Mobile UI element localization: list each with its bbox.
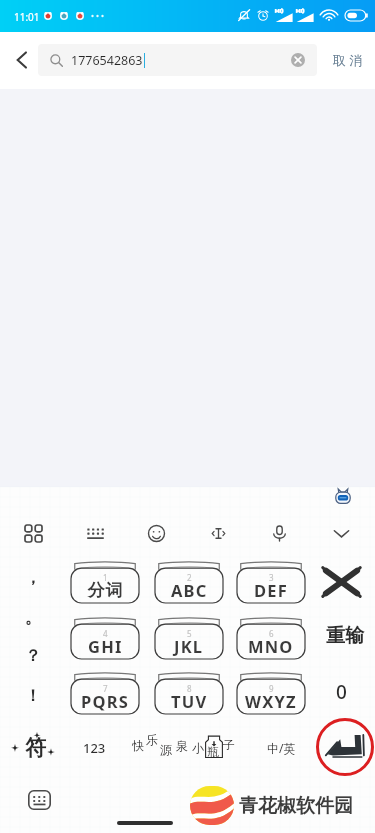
button[interactable]: 3 bbox=[237, 562, 305, 603]
button[interactable]: ？ bbox=[9, 640, 57, 672]
staticText: ？ bbox=[25, 646, 41, 666]
staticText: MNO bbox=[248, 635, 294, 657]
staticText: PQRS bbox=[81, 690, 130, 712]
staticText: WXYZ bbox=[245, 690, 297, 712]
staticText: 3 bbox=[269, 572, 274, 583]
button[interactable]: Apps bbox=[7, 514, 59, 552]
button[interactable]: Emoji bbox=[130, 514, 182, 552]
button[interactable]: Delete bbox=[313, 561, 369, 603]
staticText: 9 bbox=[269, 683, 274, 694]
button[interactable]: 1 bbox=[71, 562, 139, 603]
staticText: 1776542863 bbox=[71, 52, 143, 69]
button[interactable]: 1776542863 bbox=[38, 44, 317, 76]
staticText: ！ bbox=[25, 686, 41, 706]
button[interactable]: 0 bbox=[313, 671, 369, 713]
staticText: 乐 bbox=[146, 732, 158, 747]
button[interactable]: Voice bbox=[253, 514, 305, 552]
staticText: 快 bbox=[132, 738, 144, 753]
staticText: ， bbox=[25, 568, 41, 588]
button[interactable]: 123 bbox=[70, 733, 118, 763]
button[interactable]: 符 bbox=[9, 726, 59, 768]
button[interactable]: 。 bbox=[9, 602, 57, 634]
staticText: 取 消 bbox=[333, 51, 363, 69]
button[interactable]: 中/英 bbox=[258, 733, 304, 763]
button[interactable]: Clear bbox=[288, 50, 308, 70]
button[interactable]: Cursor bbox=[192, 514, 244, 552]
staticText: 6 bbox=[269, 628, 274, 639]
staticText: 5 bbox=[187, 628, 192, 639]
staticText: 子 bbox=[223, 737, 235, 752]
staticText: 4 bbox=[103, 628, 108, 639]
staticText: 泉 bbox=[176, 738, 188, 753]
button[interactable]: Hide keyboard bbox=[315, 514, 367, 552]
staticText: 青花椒软件园 bbox=[239, 794, 353, 818]
button[interactable]: ！ bbox=[9, 680, 57, 712]
button[interactable]: 重输 bbox=[317, 615, 373, 657]
staticText: 8 bbox=[187, 683, 192, 694]
staticText: 0 bbox=[336, 679, 347, 705]
button[interactable]: 7 bbox=[71, 673, 139, 714]
staticText: ABC bbox=[171, 579, 208, 601]
staticText: TUV bbox=[171, 690, 208, 712]
staticText: 符 bbox=[25, 735, 46, 761]
staticText: 2 bbox=[187, 572, 192, 583]
staticText: 分词 bbox=[87, 580, 123, 601]
staticText: 重输 bbox=[326, 624, 364, 648]
button[interactable]: Back bbox=[2, 32, 42, 88]
button[interactable]: 6 bbox=[237, 618, 305, 659]
button[interactable]: 8 bbox=[155, 673, 223, 714]
button[interactable]: Space bbox=[130, 731, 246, 767]
staticText: 1 bbox=[103, 572, 108, 583]
staticText: GHI bbox=[88, 635, 123, 657]
staticText: 123 bbox=[83, 739, 106, 757]
staticText: 小 bbox=[192, 740, 204, 755]
staticText: 11:01 bbox=[14, 10, 40, 24]
staticText: 源 bbox=[160, 742, 172, 757]
button[interactable]: Keyboard bbox=[69, 514, 121, 552]
button[interactable]: Switch input method bbox=[26, 788, 53, 812]
button[interactable]: 5 bbox=[155, 618, 223, 659]
staticText: DEF bbox=[254, 579, 288, 601]
button[interactable]: 9 bbox=[237, 673, 305, 714]
button[interactable]: 2 bbox=[155, 562, 223, 603]
staticText: 7 bbox=[103, 683, 108, 694]
staticText: JKL bbox=[174, 635, 204, 657]
button[interactable]: 4 bbox=[71, 618, 139, 659]
staticText: 中/英 bbox=[267, 740, 296, 756]
button[interactable]: Enter bbox=[315, 717, 375, 777]
button[interactable]: ， bbox=[9, 562, 57, 594]
staticText: 瓶 bbox=[207, 744, 219, 759]
staticText: 。 bbox=[25, 608, 41, 628]
button[interactable]: 取 消 bbox=[320, 32, 375, 88]
